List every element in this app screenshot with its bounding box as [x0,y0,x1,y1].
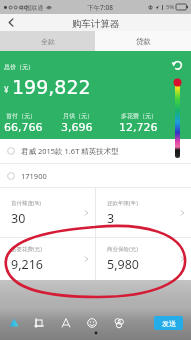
staticText: 下午7:08 [87,3,113,12]
button[interactable]: Back [0,14,22,31]
staticText: 5% [166,3,175,11]
staticText: ¥ [4,84,9,95]
staticText: 君威 2015款 1.6T 精英技术型 [21,146,119,156]
button[interactable]: 全款 [0,31,95,51]
button[interactable]: 商业保险(元) [96,238,191,280]
staticText: 12,726 [119,121,158,134]
staticText: 首付（元） [6,112,36,120]
staticText: 多花费（元） [121,112,157,120]
staticText: 199,822 [12,76,91,98]
button[interactable]: 君威 2015款 1.6T 精英技术型 [0,139,191,163]
staticText: 3 [107,210,115,227]
button[interactable]: 171900 [0,164,191,187]
button[interactable]: Crop [29,313,49,333]
staticText: 9,216 [11,256,43,273]
button[interactable]: 发送 [154,316,183,330]
staticText: *此结果仅供参考，实际价格以当地经销商为准 [39,290,153,298]
staticText: 购车计算器 [72,18,120,30]
staticText: 5,980 [107,256,139,273]
button[interactable]: 必要花费(元) [0,238,95,280]
button[interactable]: Emoji [82,313,102,333]
staticText: 月供（元） [63,112,93,120]
staticText: 3,696 [61,121,93,134]
staticText: 66,766 [4,121,43,134]
staticText: 还款年限(年) [107,199,138,207]
staticText: 发送 [162,319,176,328]
staticText: 中国联通 [20,4,44,11]
button[interactable]: Undo [171,59,184,72]
button[interactable]: 还款年限(年) [96,188,191,237]
staticText: 全款 [41,37,55,46]
button[interactable]: Mosaic [109,313,129,333]
staticText: 30 [11,210,26,227]
staticText: 商业保险(元) [107,245,138,253]
staticText: 贷款 [136,37,151,46]
staticText: 171900 [21,171,47,181]
button[interactable]: 首付额度(%) [0,188,95,237]
staticText: 总价（元） [4,63,34,71]
button[interactable]: Text [56,313,76,333]
button[interactable]: Draw [4,313,24,333]
button[interactable]: 贷款 [95,31,191,51]
staticText: 首付额度(%) [11,199,41,207]
staticText: 必要花费(元) [11,245,42,253]
